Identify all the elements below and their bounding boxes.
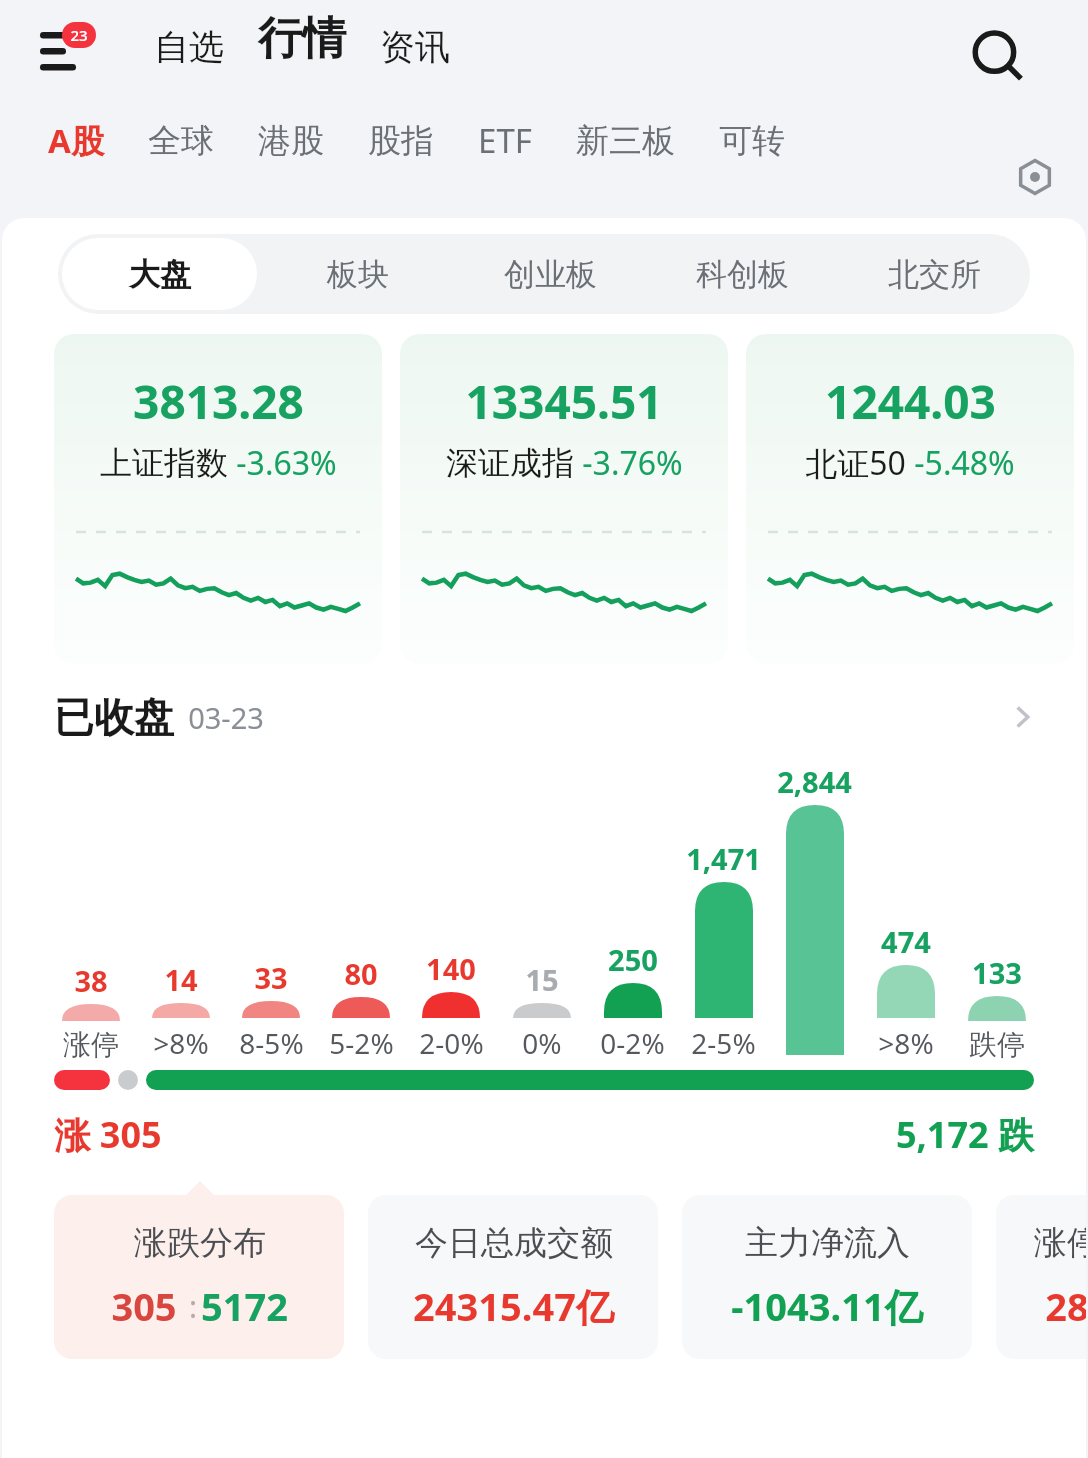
staticText: 1244.03 xyxy=(825,370,996,433)
staticText: -3.63% xyxy=(236,441,337,485)
button[interactable]: 涨跌分布 xyxy=(54,1195,344,1359)
button[interactable]: 涨停 xyxy=(996,1195,1086,1359)
staticText: 2-5% xyxy=(691,1024,756,1062)
staticText: 涨 305 xyxy=(54,1110,162,1159)
button[interactable]: Search xyxy=(965,24,1029,88)
staticText: 33 xyxy=(254,958,288,997)
staticText: 14 xyxy=(164,960,198,999)
staticText: 23 xyxy=(70,25,88,45)
button[interactable]: 资讯 xyxy=(376,25,454,69)
staticText: 板块 xyxy=(327,255,389,294)
staticText: >8% xyxy=(878,1024,934,1062)
staticText: 资讯 xyxy=(380,25,450,69)
staticText: 3813.28 xyxy=(133,370,304,433)
staticText: 0-2% xyxy=(600,1024,665,1062)
button[interactable]: 创业板 xyxy=(458,238,642,310)
staticText: 创业板 xyxy=(504,255,597,294)
staticText: 全球 xyxy=(148,120,214,162)
staticText: 250 xyxy=(608,940,658,979)
staticText: 自选 xyxy=(154,25,224,69)
staticText: 15 xyxy=(525,960,559,999)
staticText: 5,172 跌 xyxy=(896,1110,1034,1159)
staticText: >8% xyxy=(153,1024,209,1062)
button[interactable]: 1244.03 xyxy=(746,334,1074,664)
staticText: 已收盘 xyxy=(54,692,174,742)
button[interactable]: 主力净流入 xyxy=(682,1195,972,1359)
button[interactable]: 北交所 xyxy=(842,238,1026,310)
button[interactable]: ETF xyxy=(472,110,538,171)
staticText: 涨跌分布 xyxy=(134,1222,266,1264)
staticText: 大盘 xyxy=(129,255,191,294)
button[interactable]: 已收盘 xyxy=(2,682,1086,752)
staticText: 港股 xyxy=(258,120,324,162)
staticText: 涨停 xyxy=(63,1027,119,1062)
staticText: 28 xyxy=(1045,1280,1086,1332)
button[interactable]: Menu xyxy=(38,22,104,82)
staticText: 13345.51 xyxy=(465,370,663,433)
staticText: 深证成指 xyxy=(446,443,574,483)
staticText: 股指 xyxy=(368,120,434,162)
staticText: 38 xyxy=(74,961,108,1000)
button[interactable]: 行情 xyxy=(254,14,350,69)
staticText: 5-2% xyxy=(329,1024,394,1062)
staticText: 8-5% xyxy=(239,1024,304,1062)
staticText: 2,844 xyxy=(777,762,852,801)
staticText: 行情 xyxy=(258,11,346,66)
button[interactable]: 股指 xyxy=(362,112,440,170)
staticText: 科创板 xyxy=(696,255,789,294)
button[interactable]: 13345.51 xyxy=(400,334,728,664)
staticText: : xyxy=(177,1286,201,1327)
button[interactable]: 今日总成交额 xyxy=(368,1195,658,1359)
staticText: 今日总成交额 xyxy=(415,1222,613,1264)
button[interactable]: 板块 xyxy=(265,238,450,310)
staticText: 03-23 xyxy=(188,698,264,737)
button[interactable]: 全球 xyxy=(142,112,220,170)
staticText: 305 xyxy=(111,1280,177,1332)
staticText: 跌停 xyxy=(969,1027,1025,1062)
staticText: 主力净流入 xyxy=(745,1222,910,1264)
staticText: 北证50 xyxy=(805,441,906,485)
staticText: 北交所 xyxy=(888,255,981,294)
staticText: 2-0% xyxy=(419,1024,484,1062)
staticText: 涨停 xyxy=(1034,1222,1086,1264)
staticText: 24315.47亿 xyxy=(413,1280,614,1332)
button[interactable]: A股 xyxy=(42,110,110,171)
staticText: 133 xyxy=(972,953,1022,992)
staticText: 1,471 xyxy=(686,839,761,878)
staticText: -3.76% xyxy=(582,441,683,485)
staticText: ETF xyxy=(478,118,532,163)
staticText: 140 xyxy=(426,949,476,988)
button[interactable]: 新三板 xyxy=(570,112,681,170)
staticText: -1043.11亿 xyxy=(731,1280,923,1332)
staticText: -5.48% xyxy=(914,441,1015,485)
staticText: 新三板 xyxy=(576,120,675,162)
staticText: 474 xyxy=(881,922,931,961)
button[interactable]: 大盘 xyxy=(62,238,257,310)
staticText: 0% xyxy=(522,1024,562,1062)
button[interactable]: 科创板 xyxy=(650,238,834,310)
button[interactable]: More categories xyxy=(1012,154,1058,200)
staticText: 上证指数 xyxy=(100,443,228,483)
button[interactable]: 自选 xyxy=(150,25,228,69)
button[interactable]: 可转 xyxy=(713,112,791,170)
button[interactable]: 3813.28 xyxy=(54,334,382,664)
button[interactable]: 港股 xyxy=(252,112,330,170)
staticText: 可转 xyxy=(719,120,785,162)
staticText: A股 xyxy=(48,118,104,163)
staticText: 80 xyxy=(344,954,378,993)
staticText: 5172 xyxy=(201,1280,288,1332)
